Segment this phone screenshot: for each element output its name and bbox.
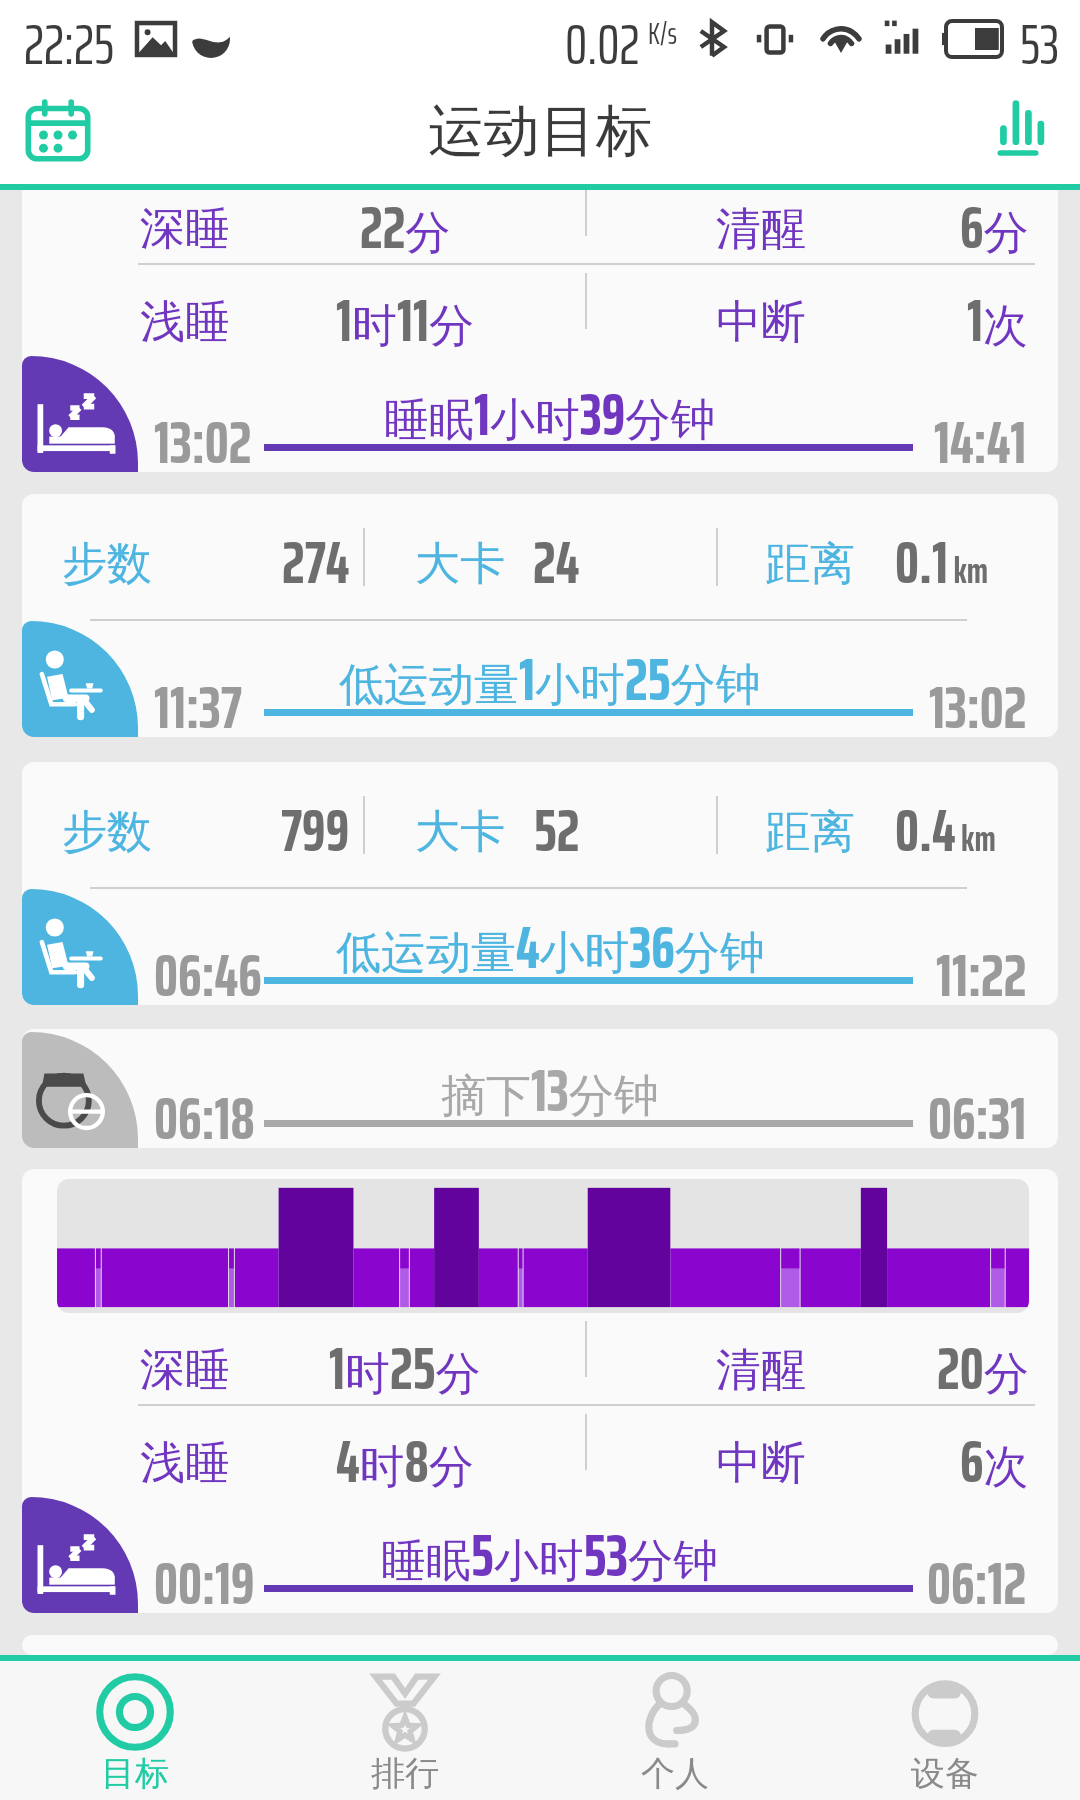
staticText: 中断 [716,294,806,351]
staticText: 22分 [360,190,451,271]
staticText: 距离 [765,536,855,593]
staticText: 深睡 [140,1342,230,1399]
button[interactable]: Statistics [968,81,1068,181]
staticText: 0.4 km [895,783,996,877]
staticText: 大卡 [415,536,505,593]
staticText: 06:46 [154,928,262,1005]
staticText: K/s [648,10,678,57]
button[interactable]: 深睡 [22,190,1058,472]
staticText: 浅睡 [140,294,230,351]
button[interactable]: 排行 [270,1661,540,1800]
staticText: 53 [1020,0,1060,78]
staticText: 06:31 [928,1071,1027,1148]
staticText: 6次 [960,1414,1029,1505]
staticText: 睡眠5小时53分钟 [381,1508,719,1602]
staticText: 13:02 [154,395,252,472]
button[interactable]: 设备 [810,1661,1080,1800]
staticText: 目标 [101,1752,169,1795]
staticText: 20分 [937,1321,1029,1412]
staticText: 个人 [641,1752,709,1795]
button[interactable]: 个人 [540,1661,810,1800]
staticText: 睡眠1小时39分钟 [384,367,716,461]
staticText: 深睡 [140,201,230,258]
button[interactable]: 步数 [22,762,1058,1005]
button[interactable]: Calendar [8,81,108,181]
staticText: 步数 [62,536,152,593]
staticText: 步数 [62,804,152,861]
staticText: 11:22 [936,928,1027,1005]
staticText: 06:18 [154,1071,255,1148]
staticText: 11:37 [154,660,242,737]
staticText: 清醒 [716,201,806,258]
staticText: 低运动量1小时25分钟 [339,632,761,726]
button[interactable]: 步数 [22,494,1058,737]
staticText: 799 [281,783,350,877]
staticText: 摘下13分钟 [441,1043,659,1137]
staticText: 14:41 [934,395,1027,472]
staticText: 大卡 [415,804,505,861]
staticText: 中断 [716,1435,806,1492]
staticText: 52 [534,783,580,877]
staticText: 排行 [371,1752,439,1795]
staticText: 24 [533,515,580,609]
button[interactable]: 06:18 [22,1029,1058,1148]
button[interactable]: 目标 [0,1661,270,1800]
staticText: 274 [282,515,350,609]
staticText: 13:02 [929,660,1027,737]
staticText: 1时11分 [336,273,475,364]
staticText: 00:19 [154,1536,255,1613]
staticText: 浅睡 [140,1435,230,1492]
button[interactable]: 深睡 [22,1169,1058,1613]
staticText: 低运动量4小时36分钟 [336,900,765,994]
staticText: 1次 [967,273,1029,364]
staticText: 22:25 [24,0,115,78]
staticText: 运动目标 [428,96,652,167]
staticText: 0.02 [565,0,640,78]
staticText: 距离 [765,804,855,861]
staticText: 4时8分 [336,1414,474,1505]
staticText: 1时25分 [329,1321,481,1412]
staticText: 06:12 [927,1536,1027,1613]
staticText: 清醒 [716,1342,806,1399]
staticText: 0.1 km [895,515,989,609]
staticText: 设备 [911,1752,979,1795]
staticText: 6分 [960,190,1029,271]
